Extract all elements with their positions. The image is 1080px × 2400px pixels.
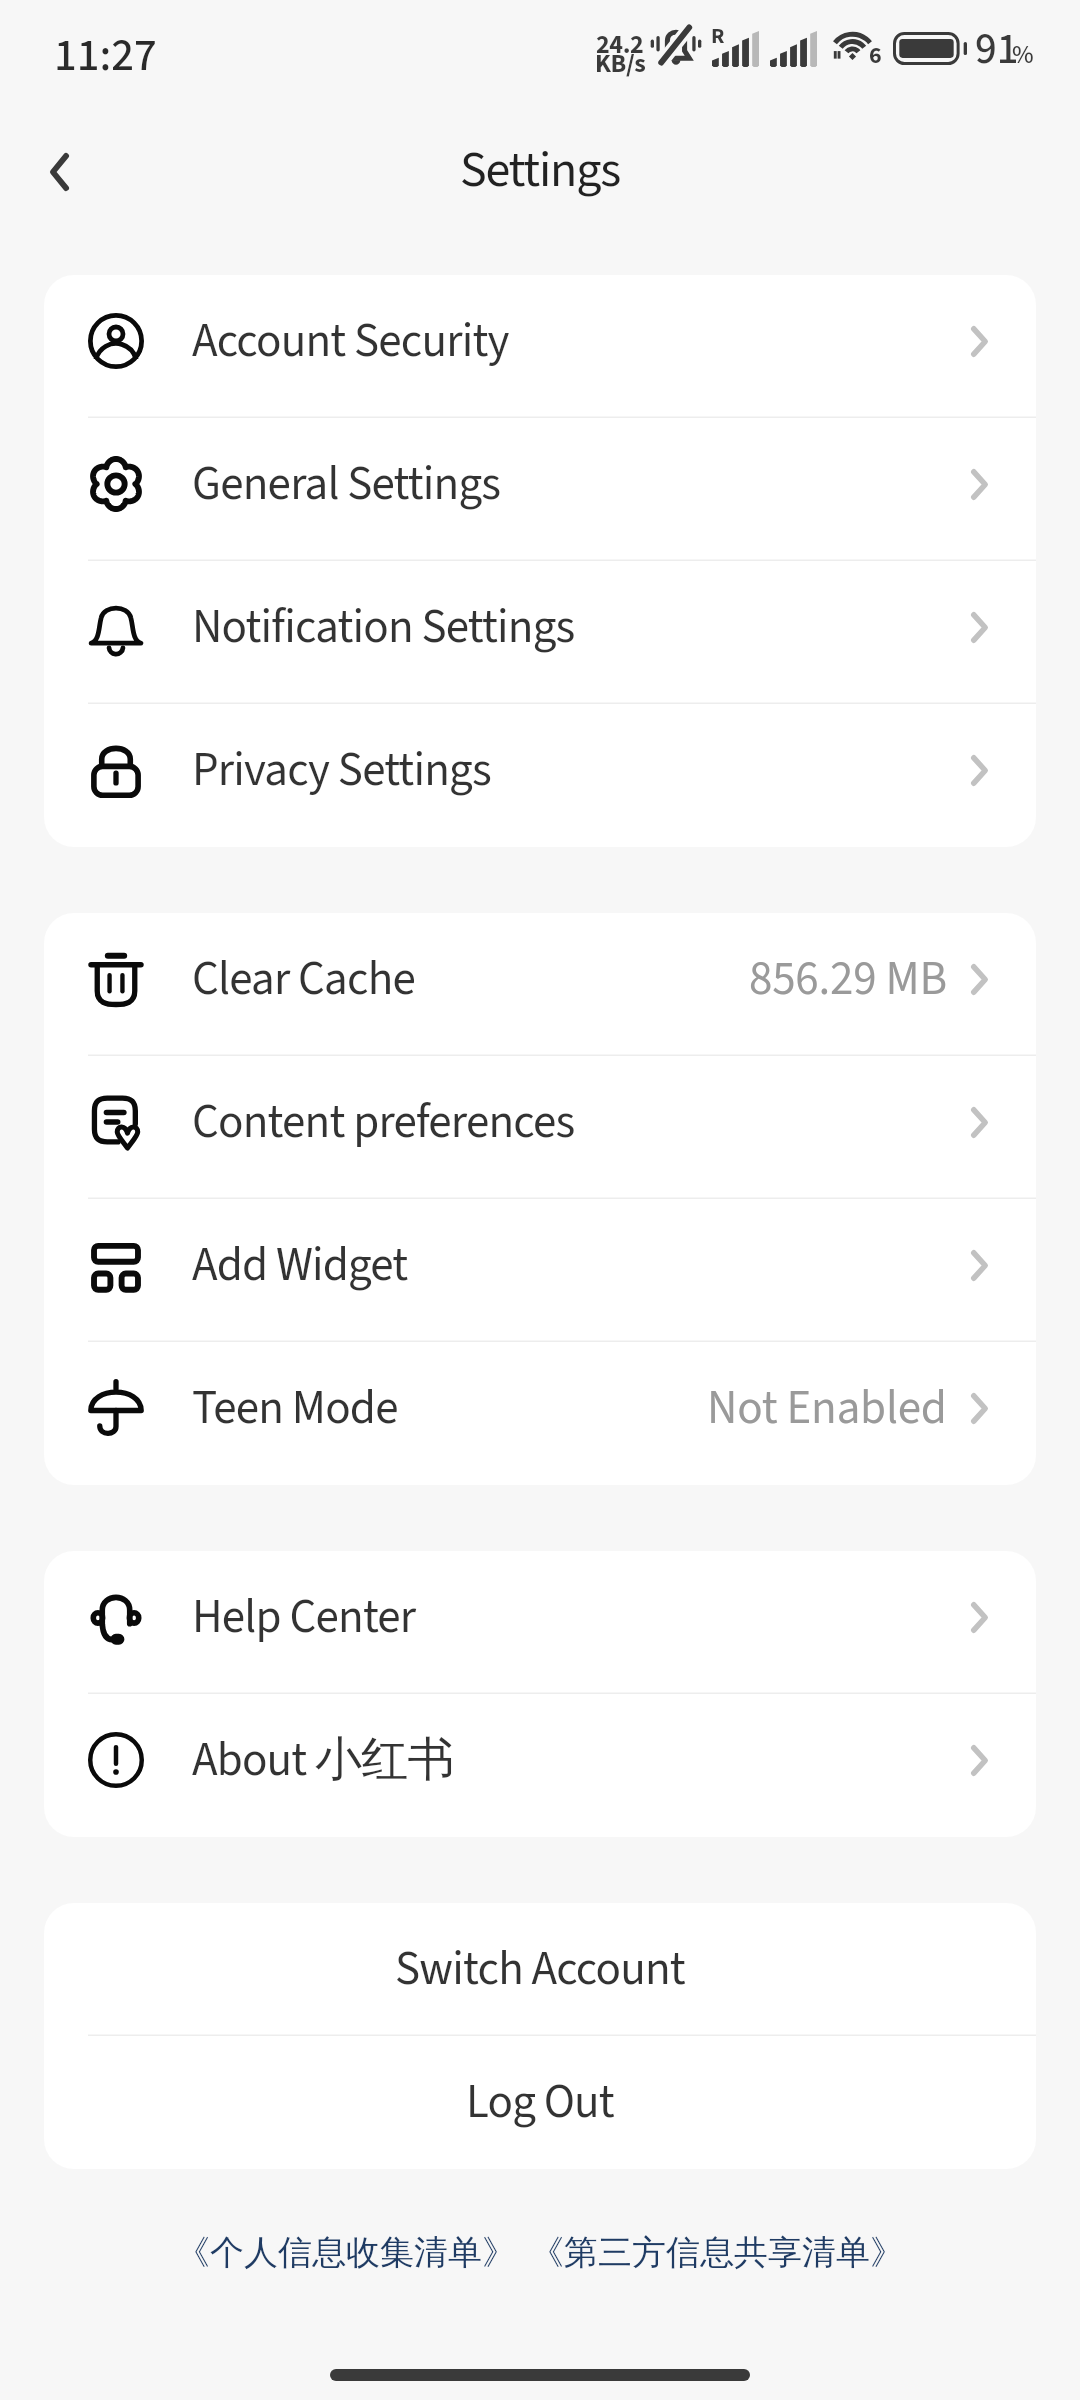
button[interactable]: Privacy Settings <box>44 704 1036 847</box>
staticText: 6 <box>869 38 882 72</box>
staticText: % <box>1012 36 1034 73</box>
staticText: Help Center <box>192 1584 416 1651</box>
button[interactable]: Switch Account <box>44 1903 1036 2036</box>
staticText: Teen Mode <box>192 1375 398 1442</box>
staticText: Settings <box>460 135 620 206</box>
button[interactable]: Account Security <box>44 275 1036 418</box>
staticText: 11:27 <box>54 24 157 88</box>
button[interactable]: Add Widget <box>44 1199 1036 1342</box>
staticText: Not Enabled <box>707 1375 947 1442</box>
button[interactable]: Clear Cache <box>44 913 1036 1056</box>
staticText: 91 <box>975 19 1019 80</box>
staticText: 856.29 MB <box>749 946 947 1013</box>
button[interactable]: Help Center <box>44 1551 1036 1694</box>
button[interactable]: About 小红书 <box>44 1694 1036 1837</box>
staticText: Privacy Settings <box>192 737 491 804</box>
button[interactable]: 《第三方信息共享清单》 <box>530 2231 904 2274</box>
button[interactable]: General Settings <box>44 418 1036 561</box>
staticText: About 小红书 <box>192 1727 454 1794</box>
staticText: Switch Account <box>395 1936 685 2003</box>
staticText: Add Widget <box>192 1232 408 1299</box>
staticText: Log Out <box>466 2069 614 2136</box>
button[interactable]: Log Out <box>44 2036 1036 2169</box>
button[interactable]: Content preferences <box>44 1056 1036 1199</box>
staticText: General Settings <box>192 451 501 518</box>
staticText: Account Security <box>192 308 509 375</box>
staticText: Clear Cache <box>192 946 415 1013</box>
staticText: Content preferences <box>192 1089 575 1156</box>
staticText: Notification Settings <box>192 594 575 661</box>
button[interactable]: Teen Mode <box>44 1342 1036 1485</box>
button[interactable]: Back <box>19 132 99 212</box>
button[interactable]: Notification Settings <box>44 561 1036 704</box>
staticText: 24.2 <box>596 26 644 63</box>
staticText: R <box>711 20 725 51</box>
staticText: KB/s <box>595 45 646 82</box>
button[interactable]: 《个人信息收集清单》 <box>176 2231 516 2274</box>
